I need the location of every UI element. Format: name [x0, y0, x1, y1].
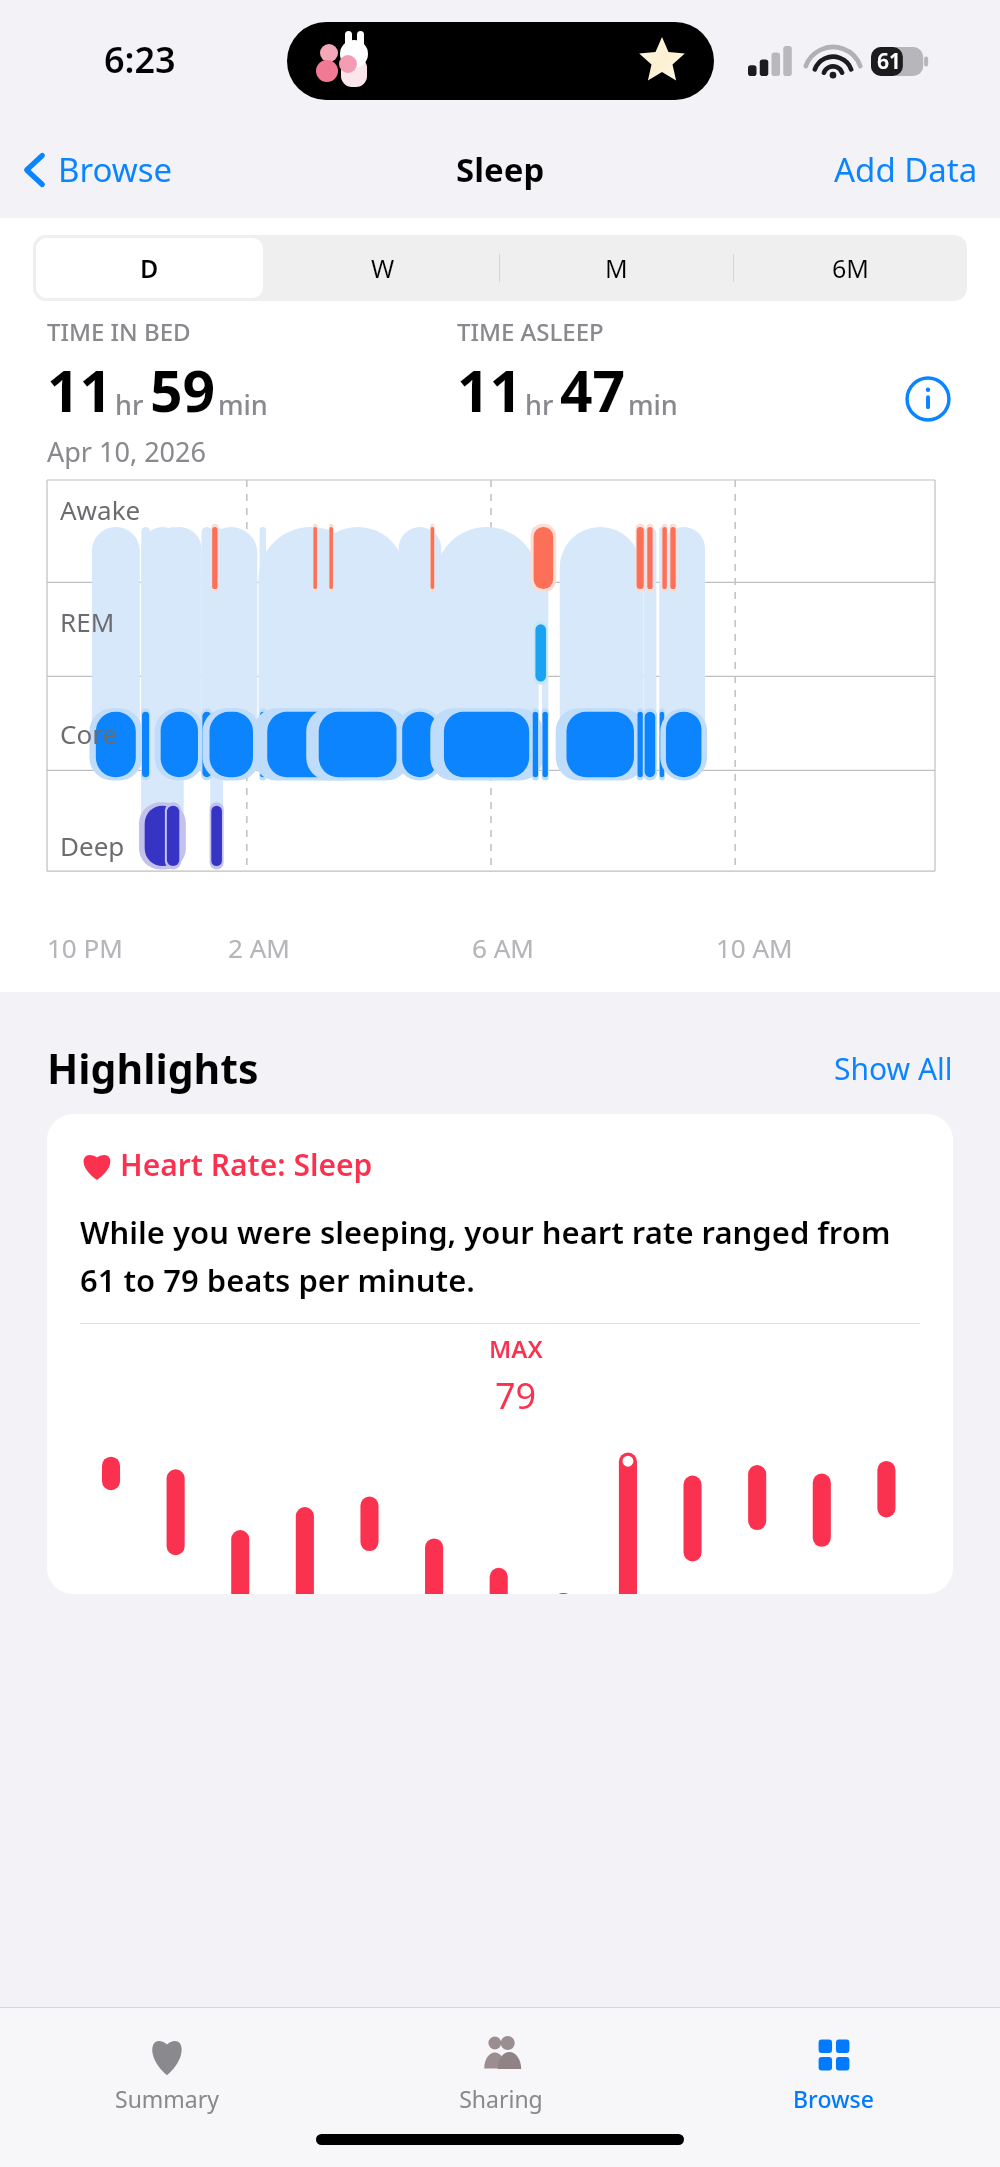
staticText: 2 AM	[228, 930, 290, 965]
staticText: 6M	[832, 251, 869, 285]
staticText: Add Data	[834, 147, 978, 192]
staticText: 6:23	[104, 35, 176, 84]
staticText: Summary	[115, 2083, 219, 2114]
staticText: 61	[877, 47, 902, 76]
staticText: 6 AM	[472, 930, 534, 965]
staticText: min	[628, 386, 678, 423]
staticText: Highlights	[47, 1040, 259, 1096]
staticText: Sleep	[456, 147, 545, 192]
staticText: Core	[60, 716, 118, 751]
button[interactable]: W	[266, 235, 499, 301]
staticText: hr	[115, 386, 144, 423]
staticText: 10 AM	[716, 930, 793, 965]
staticText: Awake	[60, 492, 141, 527]
staticText: While you were sleeping, your heart rate…	[80, 1211, 920, 1301]
staticText: D	[140, 251, 159, 285]
staticText: TIME ASLEEP	[457, 315, 604, 348]
button[interactable]: Heart Rate: Sleep	[47, 1114, 953, 1594]
button[interactable]: Summary	[0, 2023, 334, 2114]
button[interactable]: Browse	[667, 2023, 1000, 2114]
staticText: Apr 10, 2026	[47, 433, 206, 470]
staticText: hr	[525, 386, 554, 423]
staticText: Browse	[793, 2083, 874, 2114]
staticText: 11	[457, 351, 523, 429]
button[interactable]: Show All	[834, 1048, 953, 1089]
staticText: W	[371, 251, 395, 285]
staticText: Show All	[834, 1048, 953, 1089]
staticText: Sharing	[459, 2083, 543, 2114]
staticText: Deep	[60, 828, 125, 863]
staticText: 79	[495, 1371, 537, 1420]
button[interactable]: 6M	[733, 235, 967, 301]
button[interactable]: M	[499, 235, 733, 301]
staticText: Heart Rate: Sleep	[120, 1144, 373, 1185]
button[interactable]: Browse	[22, 147, 173, 192]
staticText: M	[605, 251, 628, 285]
button[interactable]: Add Data	[834, 147, 978, 192]
button[interactable]: Sharing	[334, 2023, 667, 2114]
staticText: 10 PM	[47, 930, 123, 965]
staticText: Browse	[58, 147, 173, 192]
button[interactable]: D	[33, 235, 266, 301]
staticText: MAX	[489, 1332, 543, 1365]
staticText: 47	[560, 351, 626, 429]
button[interactable]: Information	[903, 374, 953, 424]
staticText: TIME IN BED	[47, 315, 191, 348]
staticText: min	[218, 386, 268, 423]
staticText: REM	[60, 604, 115, 639]
staticText: 59	[150, 351, 216, 429]
staticText: 11	[47, 351, 113, 429]
